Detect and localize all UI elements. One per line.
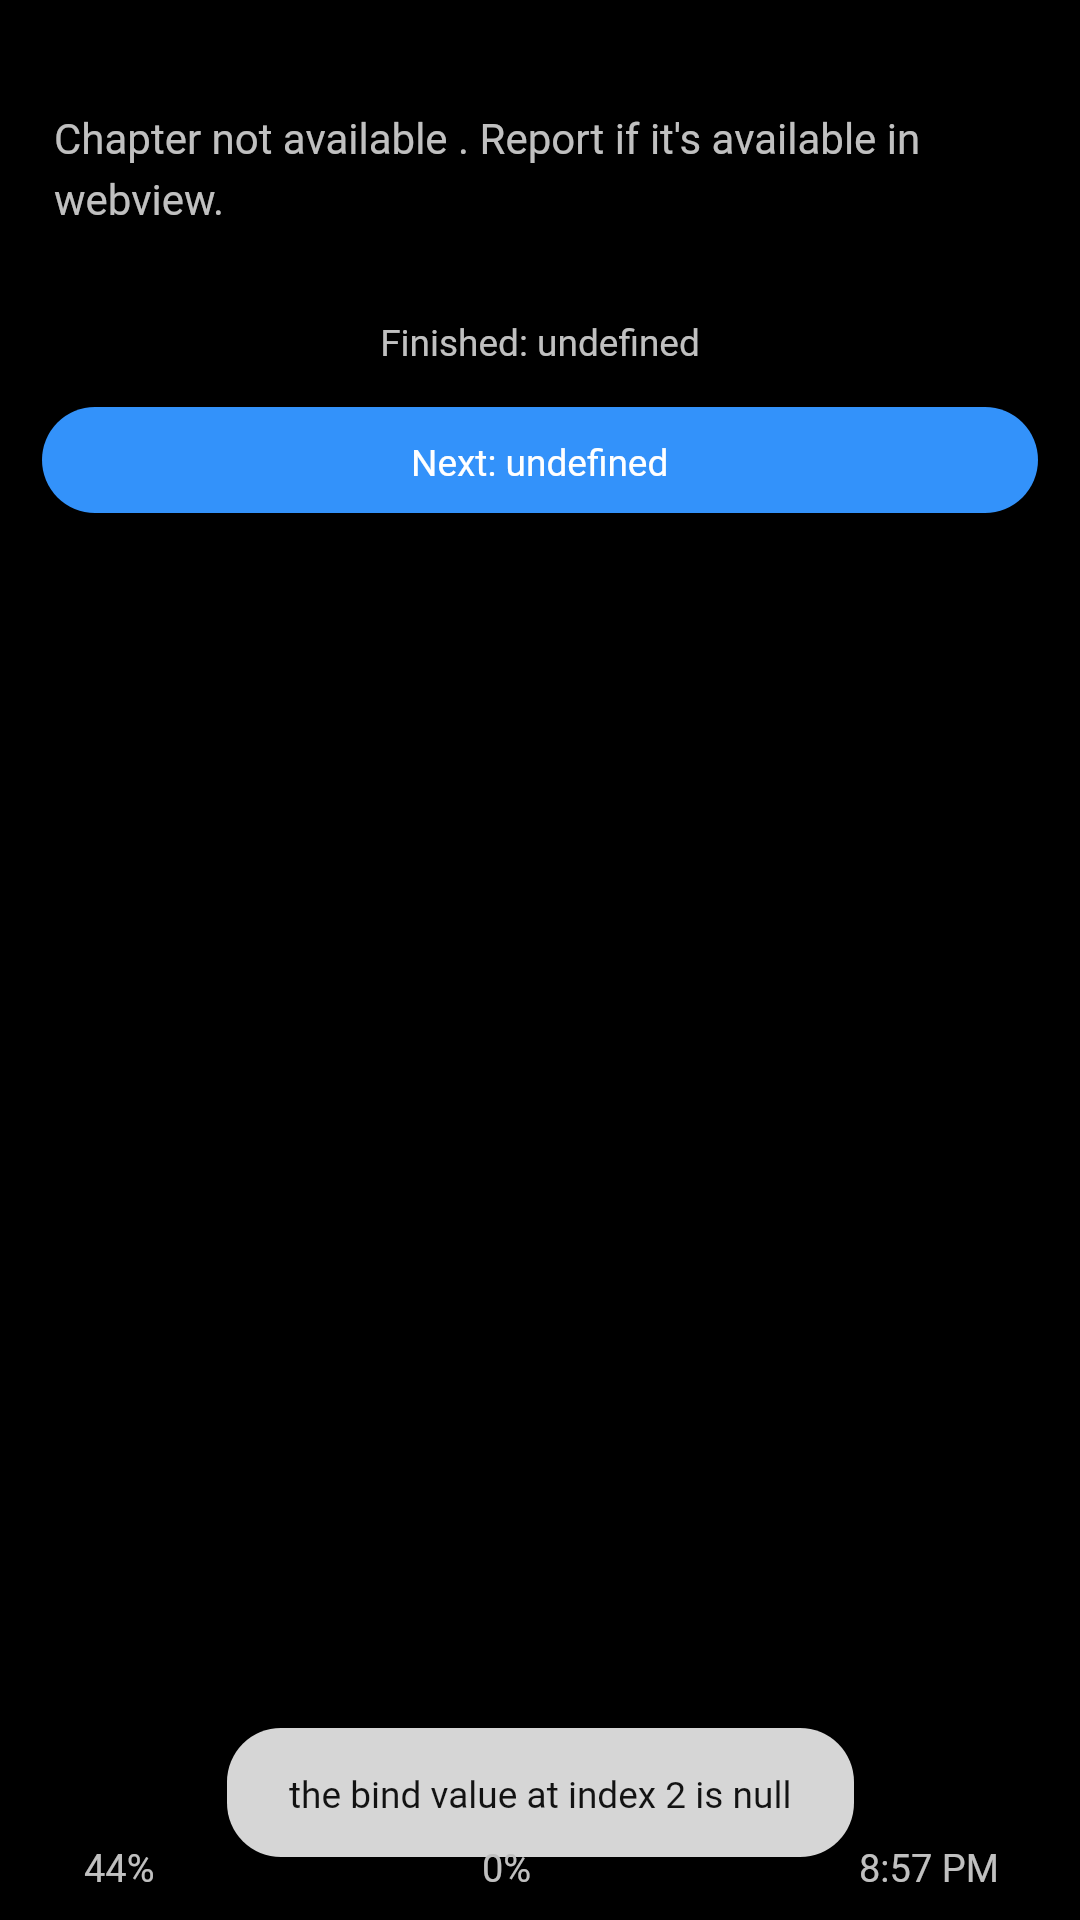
staticText: 0%	[482, 1847, 532, 1892]
staticText: the bind value at index 2 is null	[289, 1774, 792, 1817]
button[interactable]: Next: undefined	[42, 407, 1038, 513]
staticText: Chapter not available . Report if it's a…	[54, 115, 1026, 226]
staticText: 44%	[84, 1847, 155, 1892]
staticText: Next: undefined	[411, 442, 669, 485]
staticText: Finished: undefined	[0, 322, 1080, 365]
staticText: 8:57 PM	[859, 1847, 999, 1892]
